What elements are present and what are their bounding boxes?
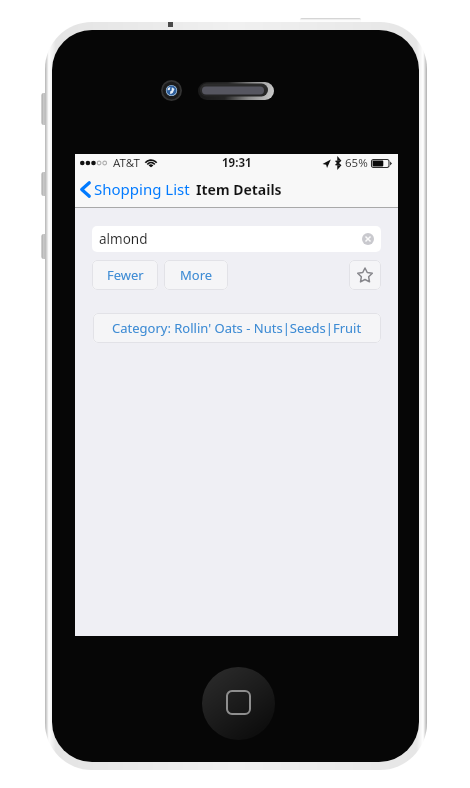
button[interactable]: More <box>164 260 228 290</box>
staticText: 19:31 <box>222 155 252 171</box>
button[interactable]: Shopping List <box>75 179 192 199</box>
staticText: Category: Rollin' Oats - Nuts|Seeds|Frui… <box>112 319 362 337</box>
button[interactable]: almond <box>92 226 381 252</box>
button[interactable]: Favorite <box>349 260 381 290</box>
staticText: AT&T <box>113 155 140 171</box>
staticText: More <box>180 266 213 284</box>
button[interactable]: Clear text <box>362 233 374 245</box>
staticText: Fewer <box>107 266 144 284</box>
staticText: Item Details <box>196 180 282 199</box>
staticText: 65% <box>345 155 368 171</box>
staticText: almond <box>99 230 148 248</box>
button[interactable]: Category: Rollin' Oats - Nuts|Seeds|Frui… <box>93 313 381 343</box>
staticText: Shopping List <box>94 179 190 199</box>
button[interactable]: Fewer <box>92 260 158 290</box>
button[interactable]: Home <box>202 667 275 740</box>
